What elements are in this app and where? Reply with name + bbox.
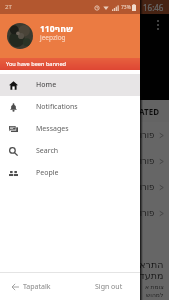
staticText: 73% (121, 4, 131, 11)
button[interactable]: פורום (0, 200, 169, 226)
staticText: People (36, 168, 59, 178)
staticText: TOP RATED (116, 106, 160, 117)
staticText: פורום (134, 156, 155, 166)
staticText: פורום (134, 208, 155, 218)
button[interactable]: פורום (0, 122, 169, 148)
button[interactable]: פורום (0, 148, 169, 174)
staticText: למהוש (146, 291, 164, 298)
button[interactable]: פורום (0, 174, 169, 200)
staticText: פורום (134, 130, 155, 140)
staticText: Messages (36, 124, 69, 134)
button[interactable]: Tapatalk (0, 277, 57, 297)
staticText: 16:46 (143, 2, 164, 13)
button[interactable]: More options (157, 20, 159, 30)
button[interactable]: People (0, 162, 140, 184)
staticText: 2T (5, 3, 12, 11)
staticText: Search (36, 146, 59, 156)
staticText: התראה (133, 259, 164, 270)
staticText: מתעדכן (132, 270, 164, 281)
staticText: פורום (134, 182, 155, 192)
button[interactable]: Search (0, 140, 140, 162)
button[interactable]: Notifications (0, 96, 140, 118)
button[interactable]: Messages (0, 118, 140, 140)
staticText: Sign out (95, 282, 123, 292)
staticText: צומת א (145, 283, 164, 291)
staticText: Home (36, 80, 57, 90)
staticText: jeepzlog (40, 33, 66, 42)
button[interactable]: Home (0, 74, 140, 96)
staticText: שחף110 (40, 23, 73, 32)
staticText: You have been banned (6, 60, 66, 68)
button[interactable]: Sign out (86, 276, 140, 298)
staticText: Tapatalk (23, 282, 51, 292)
staticText: Notifications (36, 102, 78, 112)
